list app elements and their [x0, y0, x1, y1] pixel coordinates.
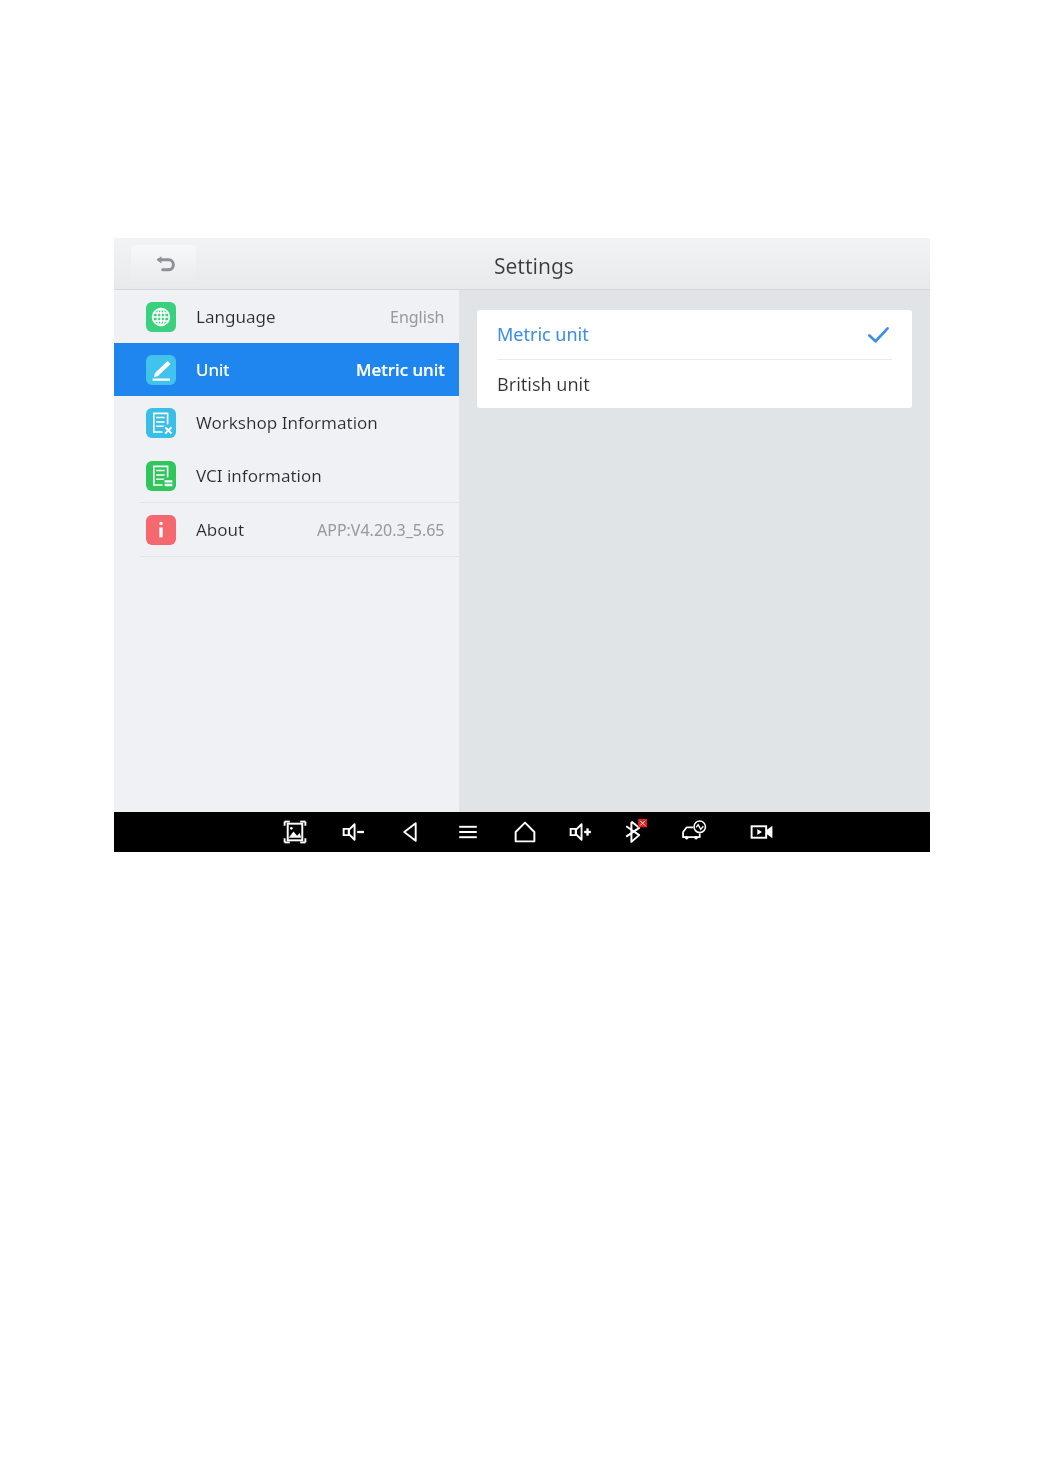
- staticText: VCI information: [196, 464, 322, 487]
- button[interactable]: Volume up: [560, 814, 600, 850]
- button[interactable]: Back: [131, 245, 196, 282]
- button[interactable]: About: [114, 503, 459, 556]
- button[interactable]: British unit: [477, 360, 912, 408]
- button[interactable]: Unit: [114, 343, 459, 396]
- button[interactable]: Back: [391, 814, 431, 850]
- button[interactable]: Record: [742, 814, 782, 850]
- staticText: Metric unit: [356, 358, 445, 381]
- button[interactable]: Language: [114, 290, 459, 343]
- staticText: British unit: [497, 372, 590, 397]
- button[interactable]: VCI information: [114, 449, 459, 502]
- staticText: Settings: [494, 252, 574, 281]
- staticText: Workshop Information: [196, 411, 378, 434]
- staticText: APP:V4.20.3_5.65: [317, 519, 445, 541]
- button[interactable]: Volume down: [333, 814, 373, 850]
- button[interactable]: Workshop Information: [114, 396, 459, 449]
- staticText: About: [196, 518, 245, 541]
- button[interactable]: Metric unit: [477, 310, 912, 359]
- button[interactable]: Screenshot: [275, 814, 315, 850]
- button[interactable]: Diagnostics: [674, 814, 714, 850]
- button[interactable]: Menu: [448, 814, 488, 850]
- staticText: Unit: [196, 358, 230, 381]
- button[interactable]: Bluetooth: [614, 814, 654, 850]
- staticText: Metric unit: [497, 322, 589, 347]
- staticText: English: [390, 306, 445, 328]
- button[interactable]: Home: [505, 814, 545, 850]
- staticText: Language: [196, 305, 276, 328]
